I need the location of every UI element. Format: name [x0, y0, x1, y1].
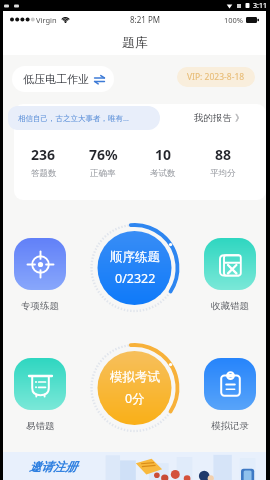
- staticText: 236: [31, 145, 56, 164]
- staticText: 100%: [224, 15, 244, 25]
- button[interactable]: 模拟记录: [204, 358, 256, 432]
- button[interactable]: VIP: 2023-8-18: [177, 67, 255, 87]
- staticText: 模拟记录: [211, 420, 249, 432]
- button[interactable]: 顺序练题: [89, 223, 180, 313]
- staticText: 3:11: [253, 1, 267, 11]
- staticText: 顺序练题: [110, 249, 160, 265]
- staticText: 》: [235, 112, 244, 123]
- staticText: 考试数: [150, 168, 176, 179]
- button[interactable]: 相信自己，古之立大事者，唯有…: [8, 106, 160, 130]
- staticText: 8:21 PM: [130, 14, 161, 25]
- staticText: 易错题: [26, 420, 55, 432]
- staticText: 邀请注册: [29, 459, 77, 474]
- staticText: 88: [215, 145, 232, 164]
- other: 专项练题: [27, 251, 54, 278]
- staticText: 0分: [125, 390, 145, 407]
- button[interactable]: 专项练题: [14, 238, 66, 312]
- button[interactable]: 邀请注册: [3, 452, 266, 480]
- staticText: 正确率: [90, 168, 116, 179]
- staticText: Virgin: [36, 15, 57, 25]
- staticText: 低压电工作业: [23, 72, 89, 86]
- button[interactable]: 收藏错题: [204, 238, 256, 312]
- button[interactable]: 易错题: [14, 358, 66, 432]
- other: 易错题: [27, 371, 54, 398]
- staticText: 我的报告: [194, 112, 232, 124]
- button[interactable]: 我的报告: [194, 104, 266, 131]
- staticText: 收藏错题: [211, 300, 249, 312]
- other: 模拟记录: [217, 371, 244, 398]
- button[interactable]: [14, 104, 266, 200]
- button[interactable]: 模拟考试: [89, 343, 180, 433]
- staticText: VIP: 2023-8-18: [187, 71, 245, 83]
- other: 收藏错题: [217, 251, 244, 278]
- staticText: 10: [155, 145, 172, 164]
- staticText: 平均分: [210, 168, 236, 179]
- staticText: 相信自己，古之立大事者，唯有…: [18, 113, 129, 123]
- staticText: 76%: [89, 145, 118, 164]
- staticText: 题库: [122, 34, 148, 50]
- staticText: 专项练题: [21, 300, 59, 312]
- button[interactable]: 低压电工作业: [12, 66, 114, 92]
- staticText: 模拟考试: [110, 369, 160, 385]
- staticText: 0/2322: [115, 270, 156, 287]
- staticText: 答题数: [31, 168, 57, 179]
